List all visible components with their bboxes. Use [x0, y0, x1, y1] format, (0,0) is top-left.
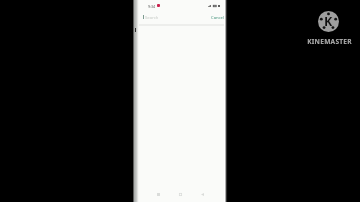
button[interactable]: Home: [176, 190, 185, 199]
staticText: Cancel: [211, 15, 225, 21]
button[interactable]: Recents: [154, 190, 163, 199]
staticText: K: [324, 13, 333, 30]
button[interactable]: Search: [141, 14, 161, 22]
button[interactable]: Cancel: [210, 14, 226, 22]
staticText: 9:34: [148, 4, 156, 9]
button[interactable]: Back: [198, 190, 207, 199]
staticText: KINEMASTER: [307, 37, 352, 46]
staticText: Search: [145, 15, 159, 21]
